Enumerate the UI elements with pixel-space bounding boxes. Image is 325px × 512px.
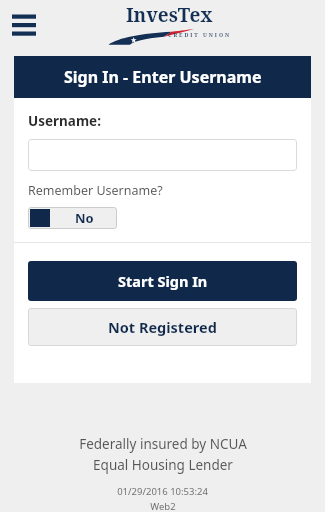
- staticText: Username:: [28, 112, 101, 130]
- staticText: InvesTex: [126, 2, 213, 28]
- staticText: C R E D I T U N I O N: [168, 31, 230, 38]
- button[interactable]: Not Registered: [28, 308, 297, 346]
- staticText: Remember Username?: [28, 182, 163, 199]
- button[interactable]: Start Sign In: [28, 261, 297, 301]
- staticText: Web2: [150, 500, 176, 512]
- staticText: Equal Housing Lender: [93, 456, 233, 474]
- staticText: Federally insured by NCUA: [79, 435, 247, 453]
- staticText: No: [75, 209, 94, 227]
- staticText: Not Registered: [108, 317, 217, 337]
- button[interactable]: Menu: [10, 11, 40, 39]
- button[interactable]: [28, 139, 297, 171]
- staticText: Sign In - Enter Username: [64, 66, 262, 88]
- button[interactable]: No: [28, 207, 117, 229]
- staticText: Start Sign In: [118, 271, 208, 291]
- staticText: 01/29/2016 10:53:24: [117, 485, 208, 498]
